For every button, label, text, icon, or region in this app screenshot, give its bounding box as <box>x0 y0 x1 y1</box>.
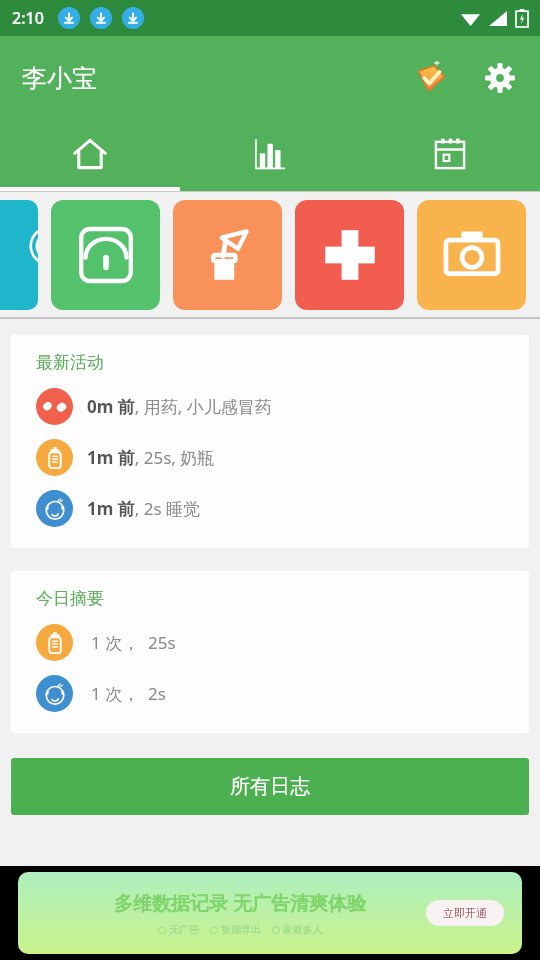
staticText: 1 次， 25s <box>91 631 176 654</box>
button[interactable]: Pump <box>173 200 282 310</box>
button[interactable]: Statistics <box>180 120 360 187</box>
button[interactable]: 所有日志 <box>11 758 529 815</box>
staticText: 最新活动 <box>36 352 104 373</box>
button[interactable]: Weight <box>51 200 160 310</box>
staticText: 1 次， 2s <box>91 682 166 705</box>
button[interactable]: Add <box>295 200 404 310</box>
button[interactable]: 1 次， 2s <box>11 668 529 719</box>
staticText: 1m 前, 2s 睡觉 <box>87 497 200 520</box>
button[interactable]: 1m 前, 2s 睡觉 <box>11 483 529 534</box>
staticText: 立即开通 <box>443 906 487 920</box>
staticText: 1m 前, 25s, 奶瓶 <box>87 446 215 469</box>
button[interactable]: Photo <box>417 200 526 310</box>
staticText: 李小宝 <box>22 63 97 94</box>
button[interactable]: Calendar <box>360 120 540 187</box>
staticText: 多维数据记录 无广告清爽体验 <box>114 890 366 916</box>
button[interactable]: 0m 前, 用药, 小儿感冒药 <box>11 381 529 432</box>
button[interactable]: VIP badge <box>410 58 450 98</box>
staticText: 0m 前, 用药, 小儿感冒药 <box>87 395 272 418</box>
staticText: 2:10 <box>12 7 44 29</box>
button[interactable]: Home <box>0 120 180 187</box>
button[interactable]: 多维数据记录 无广告清爽体验 <box>18 872 522 954</box>
button[interactable]: Settings <box>480 58 520 98</box>
staticText: 今日摘要 <box>36 588 104 609</box>
staticText: 所有日志 <box>230 774 310 799</box>
button[interactable]: 1 次， 25s <box>11 617 529 668</box>
staticText: ○ 无广告 ○ 智能导出 ○ 家庭多人 <box>158 922 323 936</box>
button[interactable]: 1m 前, 25s, 奶瓶 <box>11 432 529 483</box>
button[interactable]: Nursing <box>0 200 38 310</box>
